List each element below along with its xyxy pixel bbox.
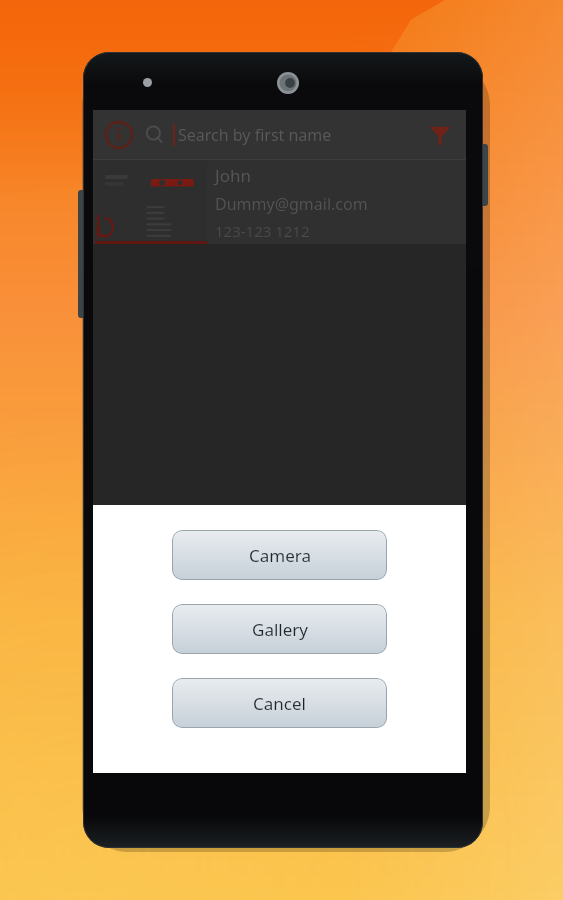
button[interactable]: Info <box>103 119 135 151</box>
button[interactable]: Cancel <box>172 678 387 728</box>
staticText: Search by first name <box>178 124 332 146</box>
staticText: 123-123 1212 <box>215 221 310 241</box>
button[interactable]: Filter <box>422 117 458 153</box>
staticText: Cancel <box>253 692 306 715</box>
staticText: Camera <box>249 544 311 567</box>
staticText: Dummy@gmail.com <box>215 193 368 215</box>
staticText: Gallery <box>252 618 308 641</box>
staticText: John <box>215 164 251 187</box>
button[interactable]: Gallery <box>172 604 387 654</box>
button[interactable]: Camera <box>172 530 387 580</box>
button[interactable]: John <box>93 160 466 244</box>
